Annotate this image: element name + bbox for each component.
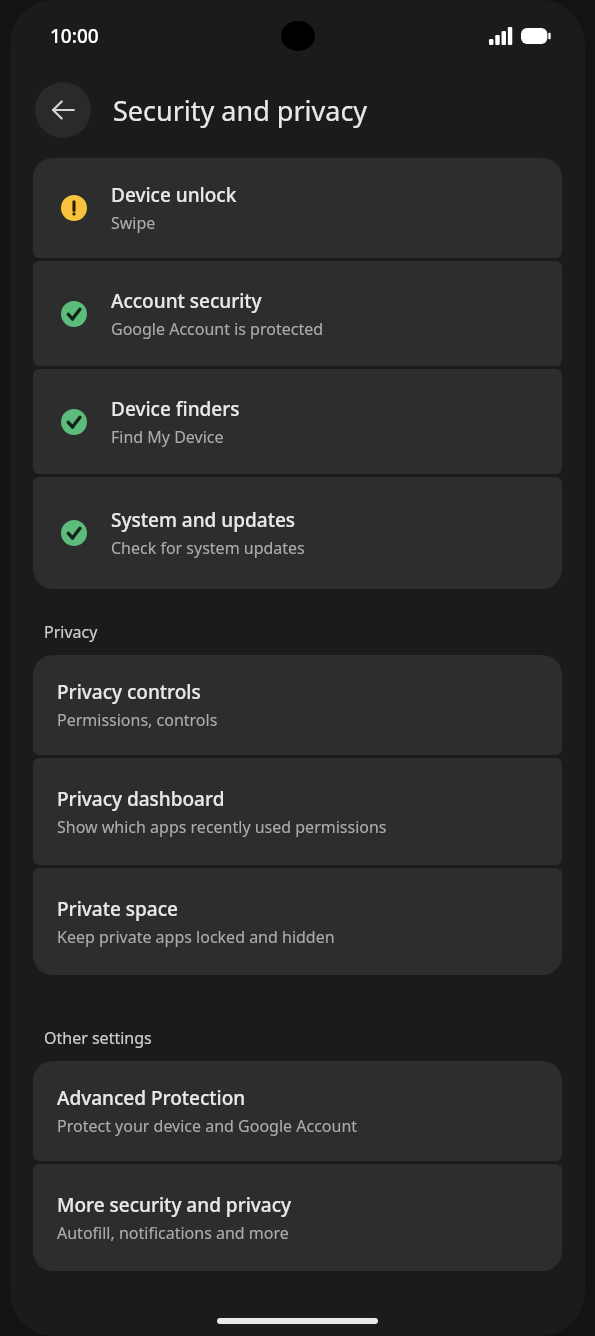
- staticText: Keep private apps locked and hidden: [57, 926, 335, 948]
- button[interactable]: Private space: [33, 868, 562, 975]
- staticText: Autofill, notifications and more: [57, 1222, 289, 1244]
- button[interactable]: More security and privacy: [33, 1164, 562, 1271]
- staticText: System and updates: [111, 507, 296, 533]
- staticText: 10:00: [50, 23, 99, 49]
- staticText: Check for system updates: [111, 537, 305, 559]
- staticText: Show which apps recently used permission…: [57, 816, 387, 838]
- staticText: Account security: [111, 288, 262, 314]
- staticText: Other settings: [44, 1027, 152, 1049]
- button[interactable]: Privacy controls: [33, 655, 562, 755]
- button[interactable]: System and updates: [33, 477, 562, 589]
- staticText: More security and privacy: [57, 1192, 292, 1218]
- staticText: Privacy controls: [57, 679, 201, 705]
- staticText: Private space: [57, 896, 178, 922]
- staticText: Device finders: [111, 396, 240, 422]
- staticText: Security and privacy: [113, 92, 368, 129]
- staticText: Advanced Protection: [57, 1085, 246, 1111]
- button[interactable]: Device finders: [33, 369, 562, 474]
- staticText: Permissions, controls: [57, 709, 218, 731]
- staticText: Privacy dashboard: [57, 786, 225, 812]
- staticText: Google Account is protected: [111, 318, 324, 340]
- staticText: Privacy: [44, 621, 98, 643]
- button[interactable]: Device unlock: [33, 158, 562, 258]
- staticText: Protect your device and Google Account: [57, 1115, 358, 1137]
- button[interactable]: Advanced Protection: [33, 1061, 562, 1161]
- button[interactable]: Account security: [33, 261, 562, 366]
- button[interactable]: Privacy dashboard: [33, 758, 562, 865]
- staticText: Find My Device: [111, 426, 224, 448]
- button[interactable]: Back: [35, 82, 91, 138]
- staticText: Device unlock: [111, 182, 237, 208]
- staticText: Swipe: [111, 212, 156, 234]
